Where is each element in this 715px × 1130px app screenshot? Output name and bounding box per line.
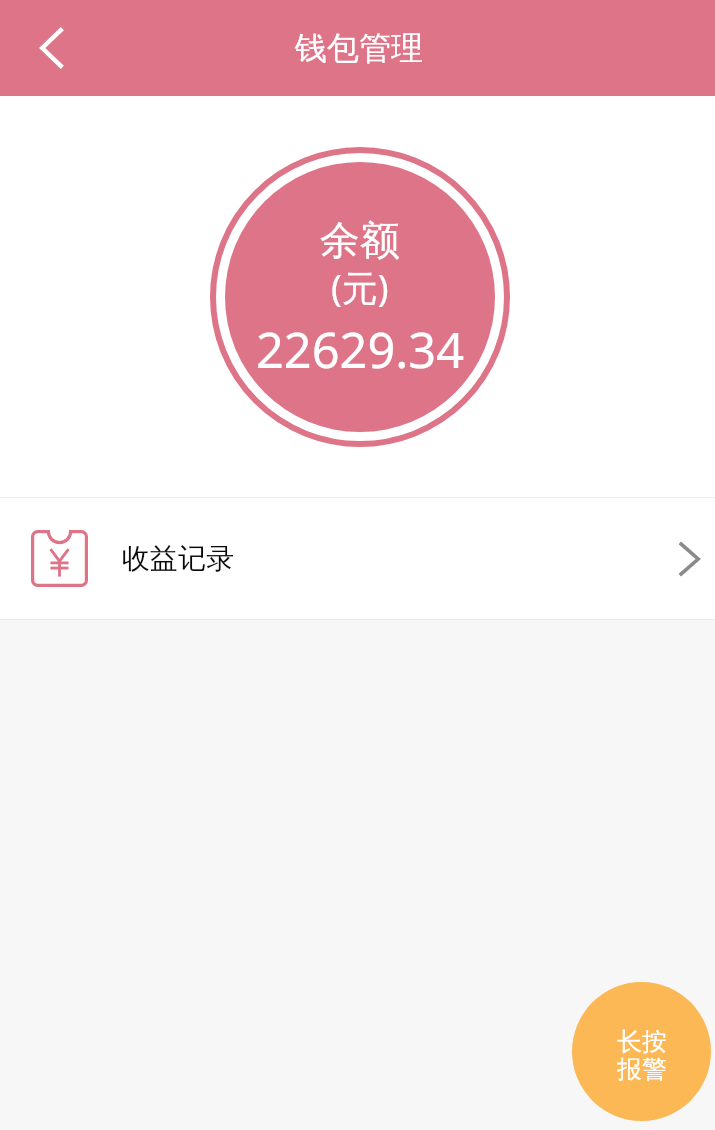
- staticText: (元): [331, 263, 389, 312]
- button[interactable]: 收益记录: [0, 498, 715, 619]
- button[interactable]: 长按 报警: [572, 982, 711, 1121]
- button[interactable]: Back: [0, 0, 100, 96]
- staticText: 钱包管理: [295, 28, 423, 68]
- staticText: 22629.34: [256, 316, 464, 382]
- staticText: 余额: [320, 215, 400, 265]
- staticText: 长按 报警: [617, 1026, 667, 1085]
- staticText: 收益记录: [122, 541, 234, 576]
